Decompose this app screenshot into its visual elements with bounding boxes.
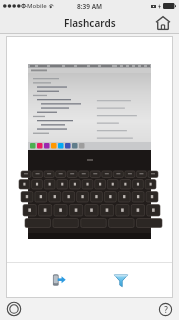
button[interactable]: Help	[155, 299, 175, 319]
button[interactable]: Filter	[107, 266, 135, 294]
staticText: ?	[164, 304, 168, 315]
staticText: Flashcards	[64, 16, 116, 30]
staticText: T-Mobile	[22, 2, 47, 10]
button[interactable]: Home	[153, 13, 173, 33]
button[interactable]: Export to device	[45, 266, 73, 294]
staticText: 8:39 AM	[77, 2, 103, 11]
button[interactable]: Record	[4, 299, 24, 319]
